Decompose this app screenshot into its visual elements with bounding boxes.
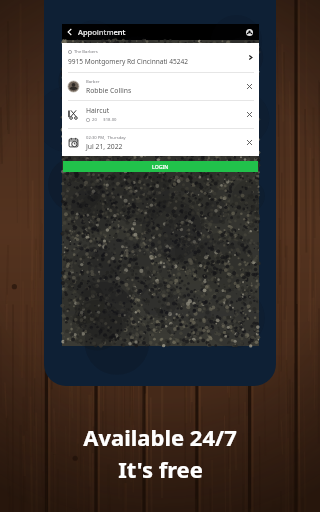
button[interactable]: LOGIN <box>63 161 258 172</box>
staticText: LOGIN <box>152 163 169 170</box>
staticText: 9915 Montgomery Rd Cincinnati 45242 <box>68 57 189 66</box>
button[interactable]: The Barbers <box>62 43 259 72</box>
staticText: It's free <box>118 454 203 484</box>
staticText: 20 $18.00 <box>92 117 117 123</box>
staticText: Haircut <box>86 106 110 115</box>
staticText: Available 24/7 <box>83 422 237 452</box>
staticText: 02:30 PM, Thursday <box>86 135 126 141</box>
button[interactable]: Back <box>62 24 78 40</box>
button[interactable]: Remove <box>245 138 254 147</box>
staticText: The Barbers <box>74 49 98 55</box>
button[interactable]: Remove <box>245 82 254 91</box>
staticText: Jul 21, 2022 <box>86 142 123 151</box>
staticText: Appointment <box>78 27 126 37</box>
button[interactable]: Barber <box>62 73 259 100</box>
button[interactable]: Account <box>241 24 257 40</box>
button[interactable]: Remove <box>245 110 254 119</box>
staticText: Robbie Collins <box>86 86 132 95</box>
button[interactable]: Haircut <box>62 101 259 128</box>
staticText: Barber <box>86 79 100 85</box>
button[interactable]: 02:30 PM, Thursday <box>62 129 259 156</box>
